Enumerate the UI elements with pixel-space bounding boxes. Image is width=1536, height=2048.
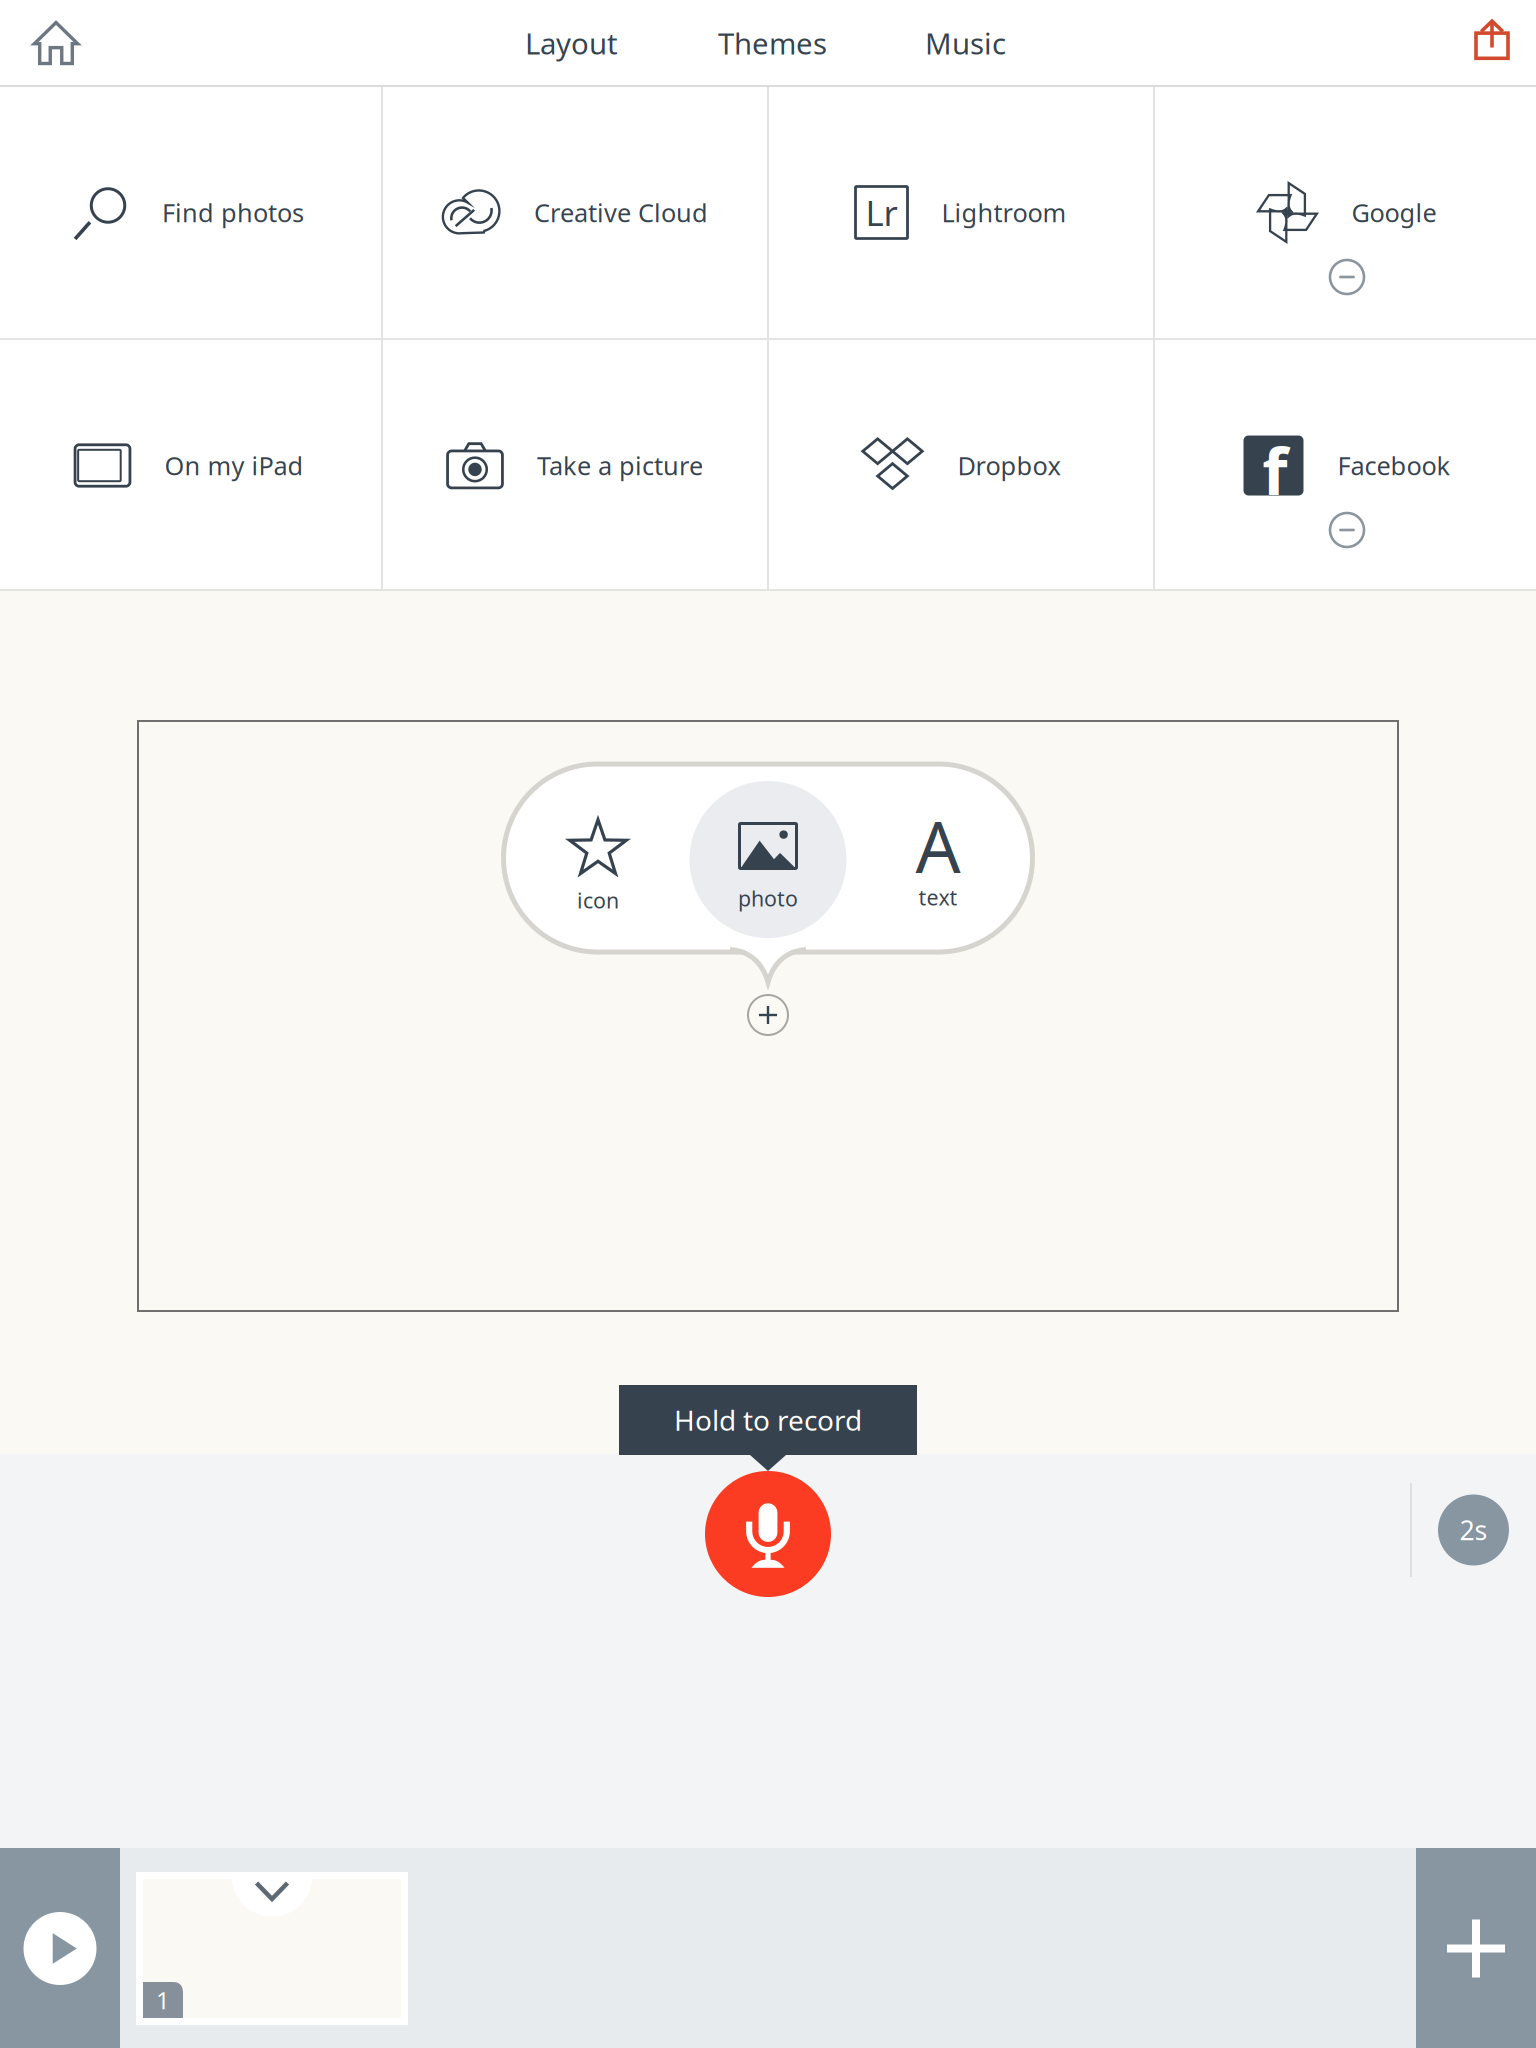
staticText: Lr: [865, 189, 897, 235]
staticText: Creative Cloud: [534, 196, 708, 229]
staticText: Facebook: [1337, 449, 1450, 482]
staticText: 2s: [1459, 1512, 1487, 1548]
staticText: Find photos: [162, 196, 304, 229]
button[interactable]: f: [1155, 340, 1536, 591]
staticText: Lightroom: [941, 196, 1066, 229]
button[interactable]: photo: [683, 764, 853, 952]
button[interactable]: 1: [136, 1872, 408, 2025]
button[interactable]: Hold to record: [705, 1471, 831, 1597]
staticText: text: [918, 883, 957, 911]
staticText: icon: [577, 886, 619, 914]
staticText: On my iPad: [164, 449, 303, 482]
staticText: Hold to record: [674, 1401, 862, 1439]
staticText: Layout: [525, 23, 618, 62]
button[interactable]: Creative Cloud: [383, 87, 767, 338]
button[interactable]: Take a picture: [383, 340, 767, 591]
staticText: photo: [738, 884, 798, 912]
button[interactable]: icon: [513, 764, 683, 952]
button[interactable]: Share: [1472, 0, 1536, 87]
button[interactable]: Add scene: [1416, 1848, 1536, 2048]
button[interactable]: Music: [925, 0, 1006, 87]
staticText: Themes: [718, 23, 827, 62]
staticText: 1: [156, 1984, 170, 2016]
button[interactable]: Themes: [718, 0, 827, 87]
staticText: Google: [1351, 196, 1436, 229]
staticText: Music: [925, 23, 1006, 62]
button[interactable]: Lr: [769, 87, 1153, 338]
button[interactable]: Layout: [525, 0, 618, 87]
staticText: Take a picture: [537, 449, 703, 482]
button[interactable]: Dropbox: [769, 340, 1153, 591]
button[interactable]: Play: [0, 1848, 120, 2048]
staticText: A: [915, 799, 960, 892]
button[interactable]: Google: [1155, 87, 1536, 338]
staticText: Dropbox: [957, 449, 1060, 482]
button[interactable]: Find photos: [0, 87, 381, 338]
button[interactable]: Home: [0, 0, 101, 87]
staticText: f: [1262, 426, 1287, 513]
button[interactable]: A: [853, 764, 1023, 952]
button[interactable]: 2s: [1438, 1494, 1509, 1565]
button[interactable]: On my iPad: [0, 340, 381, 591]
